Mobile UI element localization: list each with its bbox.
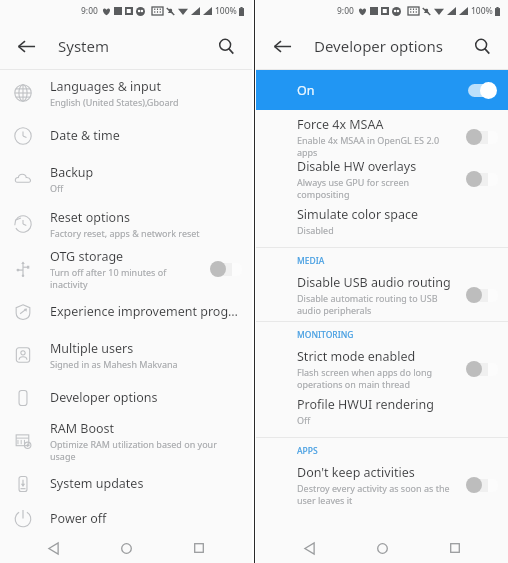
button[interactable]: Search (206, 26, 246, 66)
staticText: Destroy every activity as soon as the us… (297, 482, 458, 506)
button[interactable] (464, 168, 498, 190)
staticText: MEDIA (297, 255, 325, 267)
button[interactable]: Home (369, 535, 395, 561)
staticText: Strict mode enabled (297, 348, 416, 365)
button[interactable]: OTG storage (0, 246, 252, 291)
staticText: Factory reset, apps & network reset (50, 227, 200, 239)
button[interactable] (464, 284, 498, 306)
button[interactable] (208, 258, 242, 280)
button[interactable]: Power off (0, 504, 252, 533)
button[interactable]: Back (262, 26, 302, 66)
button[interactable]: Experience improvement programs (0, 291, 252, 332)
button[interactable]: On (256, 70, 508, 110)
staticText: On (297, 82, 464, 99)
staticText: Developer options (50, 389, 158, 406)
button[interactable]: Force 4x MSAA (256, 116, 508, 158)
staticText: Off (297, 414, 311, 426)
staticText: Power off (50, 510, 107, 527)
staticText: English (United States),Gboard (50, 96, 179, 108)
button[interactable]: Recents (442, 535, 468, 561)
staticText: Simulate color space (297, 206, 419, 223)
staticText: System (58, 36, 109, 56)
staticText: Developer options (314, 36, 444, 56)
button[interactable]: Backup (0, 156, 252, 201)
staticText: Flash screen when apps do long operation… (297, 366, 458, 390)
button[interactable]: Disable HW overlays (256, 158, 508, 200)
button[interactable] (464, 126, 498, 148)
button[interactable]: Recents (186, 535, 212, 561)
button[interactable]: Simulate color space (256, 200, 508, 242)
button[interactable]: RAM Boost (0, 418, 252, 463)
button[interactable]: Reset options (0, 201, 252, 246)
button[interactable] (464, 358, 498, 380)
staticText: Force 4x MSAA (297, 116, 384, 133)
button[interactable]: Home (113, 535, 139, 561)
staticText: Don't keep activities (297, 464, 415, 481)
button[interactable]: Developer options (0, 377, 252, 418)
button[interactable]: Multiple users (0, 332, 252, 377)
staticText: Turn off after 10 minutes of inactivity (50, 266, 202, 290)
button[interactable]: Back (6, 26, 46, 66)
button[interactable] (464, 79, 498, 101)
button[interactable]: Search (462, 26, 502, 66)
staticText: System updates (50, 475, 144, 492)
staticText: Experience improvement programs (50, 303, 242, 320)
staticText: 9:00 (337, 5, 354, 17)
button[interactable]: Strict mode enabled (256, 348, 508, 390)
staticText: Reset options (50, 209, 130, 226)
staticText: RAM Boost (50, 420, 115, 437)
staticText: Disable automatic routing to USB audio p… (297, 292, 458, 316)
staticText: Profile HWUI rendering (297, 396, 434, 413)
button[interactable]: Back (296, 535, 322, 561)
staticText: Languages & input (50, 78, 161, 95)
staticText: Disabled (297, 224, 334, 236)
staticText: 100% (215, 5, 237, 17)
staticText: APPS (297, 445, 318, 457)
button[interactable]: System updates (0, 463, 252, 504)
staticText: Enable 4x MSAA in OpenGL ES 2.0 apps (297, 134, 458, 158)
staticText: Optimize RAM utilization based on your u… (50, 438, 242, 462)
staticText: Off (50, 182, 64, 194)
staticText: Date & time (50, 127, 120, 144)
button[interactable]: Languages & input (0, 70, 252, 115)
staticText: MONITORING (297, 329, 354, 341)
button[interactable]: Profile HWUI rendering (256, 390, 508, 432)
button[interactable]: Back (40, 535, 66, 561)
staticText: OTG storage (50, 248, 124, 265)
staticText: 9:00 (81, 5, 98, 17)
button[interactable] (464, 474, 498, 496)
staticText: Disable HW overlays (297, 158, 417, 175)
button[interactable]: Disable USB audio routing (256, 274, 508, 316)
staticText: Multiple users (50, 340, 134, 357)
staticText: Disable USB audio routing (297, 274, 451, 291)
staticText: 100% (471, 5, 493, 17)
button[interactable]: Don't keep activities (256, 464, 508, 506)
staticText: Always use GPU for screen compositing (297, 176, 458, 200)
button[interactable]: Date & time (0, 115, 252, 156)
staticText: Backup (50, 164, 94, 181)
staticText: Signed in as Mahesh Makvana (50, 358, 178, 370)
